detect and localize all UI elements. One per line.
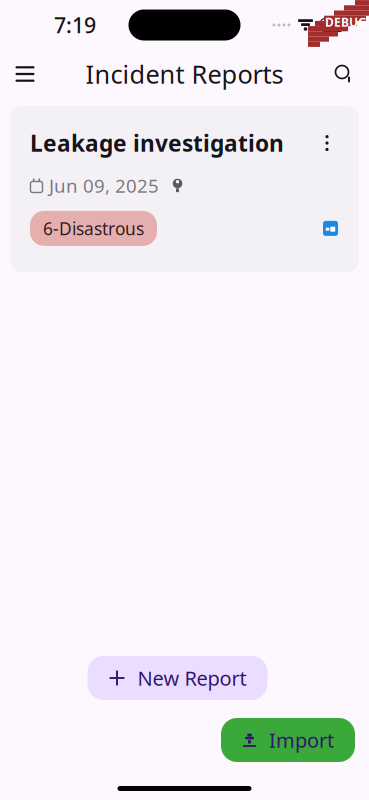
staticText: Jun 09, 2025 — [49, 173, 159, 198]
button[interactable]: Menu — [2, 51, 48, 97]
staticText: New Report — [137, 665, 246, 691]
staticText: Incident Reports — [85, 57, 283, 91]
button[interactable]: New Report — [87, 656, 267, 700]
button[interactable]: Import — [221, 718, 355, 762]
staticText: Leakage investigation — [30, 128, 284, 158]
staticText: 6-Disastrous — [43, 217, 144, 240]
staticText: Import — [269, 727, 334, 753]
staticText: DEBUG — [325, 14, 367, 30]
staticText: 7:19 — [54, 11, 96, 39]
button[interactable]: Leakage investigation — [0, 98, 369, 272]
button[interactable]: Search — [321, 51, 367, 97]
